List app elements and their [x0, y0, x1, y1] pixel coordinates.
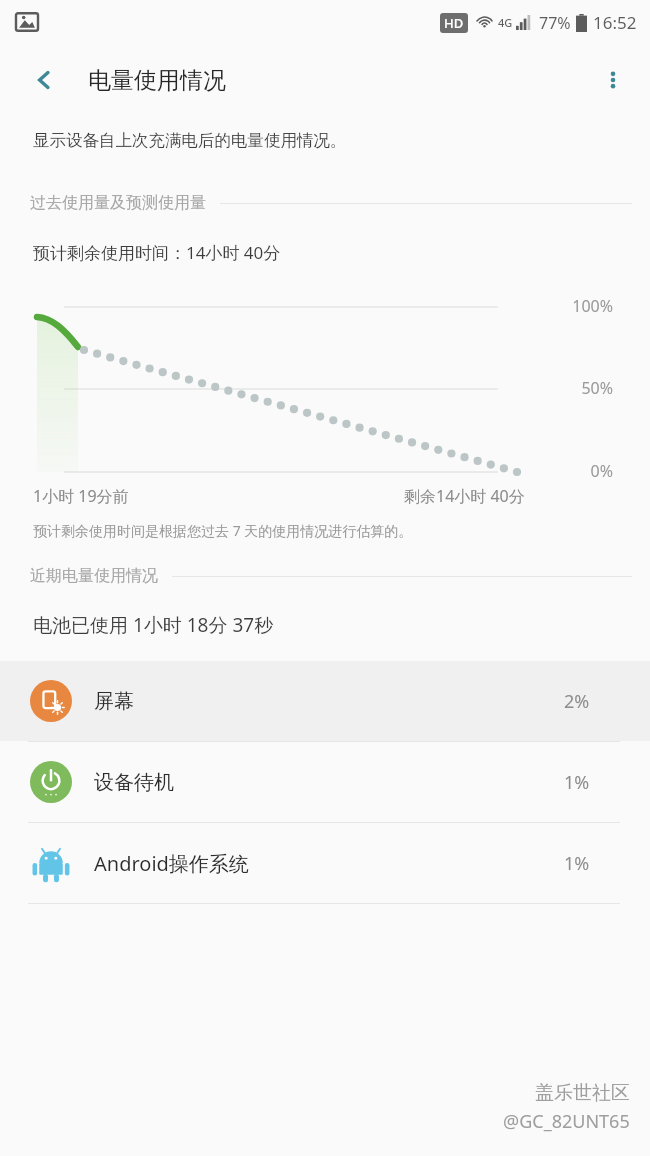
staticText: 50% [0, 377, 613, 399]
staticText: 剩余14小时 40分 [404, 485, 525, 507]
button[interactable]: 设备待机 [0, 742, 650, 822]
button[interactable]: More options [590, 57, 636, 103]
staticText: 2% [564, 689, 590, 714]
staticText: 100% [0, 295, 613, 317]
staticText: HD [444, 14, 464, 32]
staticText: 盖乐世社区 [535, 1081, 630, 1105]
staticText: Android操作系统 [94, 850, 564, 877]
staticText: 77% [539, 12, 571, 34]
staticText: 预计剩余使用时间：14小时 40分 [33, 241, 281, 264]
staticText: @GC_82UNT65 [503, 1109, 630, 1134]
staticText: 电量使用情况 [88, 66, 226, 95]
staticText: 4G [498, 15, 513, 30]
button[interactable]: Back [22, 58, 66, 102]
staticText: 预计剩余使用时间是根据您过去 7 天的使用情况进行估算的。 [33, 521, 413, 540]
staticText: 16:52 [593, 11, 637, 34]
staticText: 0% [0, 460, 613, 482]
button[interactable]: Android操作系统 [0, 823, 650, 903]
staticText: 1% [564, 851, 590, 876]
button[interactable]: 屏幕 [0, 661, 650, 741]
staticText: 电池已使用 1小时 18分 37秒 [33, 612, 274, 638]
staticText: 近期电量使用情况 [30, 566, 158, 586]
staticText: 1% [564, 770, 590, 795]
staticText: 过去使用量及预测使用量 [30, 193, 206, 213]
staticText: 1小时 19分前 [33, 485, 129, 507]
staticText: 设备待机 [94, 770, 564, 795]
staticText: 屏幕 [94, 689, 564, 714]
staticText: 显示设备自上次充满电后的电量使用情况。 [33, 130, 347, 151]
